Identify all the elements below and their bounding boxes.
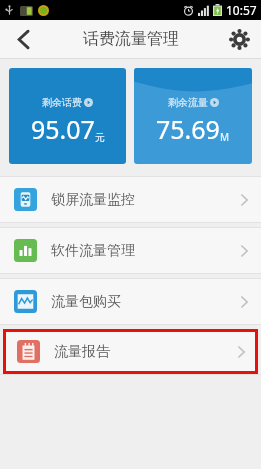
button[interactable]: Settings: [217, 20, 261, 58]
button[interactable]: 流量报告: [3, 329, 258, 374]
button[interactable]: 流量包购买: [0, 279, 261, 324]
staticText: 75.69: [156, 112, 220, 146]
button[interactable]: Back: [0, 20, 46, 58]
staticText: 流量包购买: [51, 293, 241, 311]
staticText: 锁屏流量监控: [51, 191, 241, 209]
staticText: 10:57: [226, 2, 257, 18]
button[interactable]: 软件流量管理: [0, 228, 261, 273]
staticText: 软件流量管理: [51, 242, 241, 260]
staticText: 流量报告: [54, 343, 238, 361]
staticText: M: [220, 130, 230, 144]
staticText: 95.07: [31, 112, 95, 146]
button[interactable]: 剩余流量: [134, 68, 252, 164]
button[interactable]: 剩余话费: [9, 68, 126, 164]
staticText: 话费流量管理: [83, 29, 179, 49]
staticText: 元: [95, 131, 105, 144]
staticText: 剩余话费: [42, 96, 82, 109]
button[interactable]: 锁屏流量监控: [0, 177, 261, 222]
staticText: 剩余流量: [168, 96, 208, 109]
